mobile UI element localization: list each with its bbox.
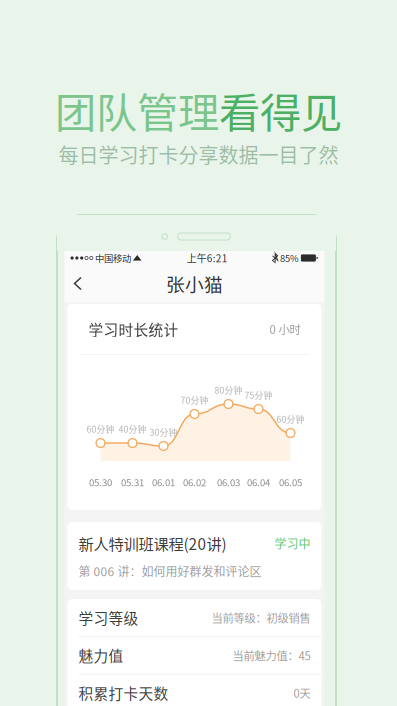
staticText: 积累打卡天数 (78, 682, 168, 703)
staticText: 06.03 (217, 475, 240, 489)
staticText: 85% (280, 251, 299, 265)
staticText: 当前等级：初级销售 (211, 609, 310, 626)
staticText: 06.01 (152, 475, 175, 489)
staticText: 60分钟 (276, 413, 304, 425)
staticText: 06.04 (247, 475, 270, 489)
staticText: 张小猫 (166, 270, 223, 297)
staticText: 魅力值 (78, 645, 123, 666)
staticText: 每日学习打卡分享数据一目了然 (58, 140, 338, 169)
staticText: 上午6:21 (187, 251, 228, 265)
button[interactable]: 学习等级 (67, 599, 321, 636)
staticText: 新人特训班课程(20讲) (78, 532, 226, 554)
button[interactable]: 积累打卡天数 (67, 674, 321, 706)
staticText: 学习时长统计 (88, 318, 178, 340)
staticText: 60分钟 (86, 423, 114, 435)
staticText: 05.30 (89, 475, 112, 489)
staticText: 团队管理 (55, 80, 219, 140)
staticText: 当前魅力值：45 (232, 647, 310, 663)
button[interactable]: 新人特训班课程(20讲) (67, 522, 321, 590)
staticText: 中国移动 (93, 251, 131, 265)
staticText: 06.05 (279, 475, 302, 489)
staticText: 0 小时 (269, 321, 300, 337)
staticText: 看得见 (219, 80, 342, 140)
staticText: 0天 (293, 685, 310, 701)
staticText: 40分钟 (118, 423, 146, 435)
staticText: 70分钟 (180, 394, 208, 406)
staticText: 06.02 (183, 475, 206, 489)
button[interactable]: 魅力值 (67, 637, 321, 674)
staticText: 75分钟 (244, 389, 272, 401)
staticText: 学习等级 (78, 607, 138, 628)
staticText: 30分钟 (149, 426, 177, 438)
staticText: 05.31 (121, 475, 144, 489)
button[interactable]: Back (64, 265, 91, 302)
staticText: 80分钟 (214, 384, 242, 396)
staticText: 第 006 讲：如何用好群发和评论区 (78, 562, 261, 580)
staticText: 学习中 (274, 535, 310, 552)
